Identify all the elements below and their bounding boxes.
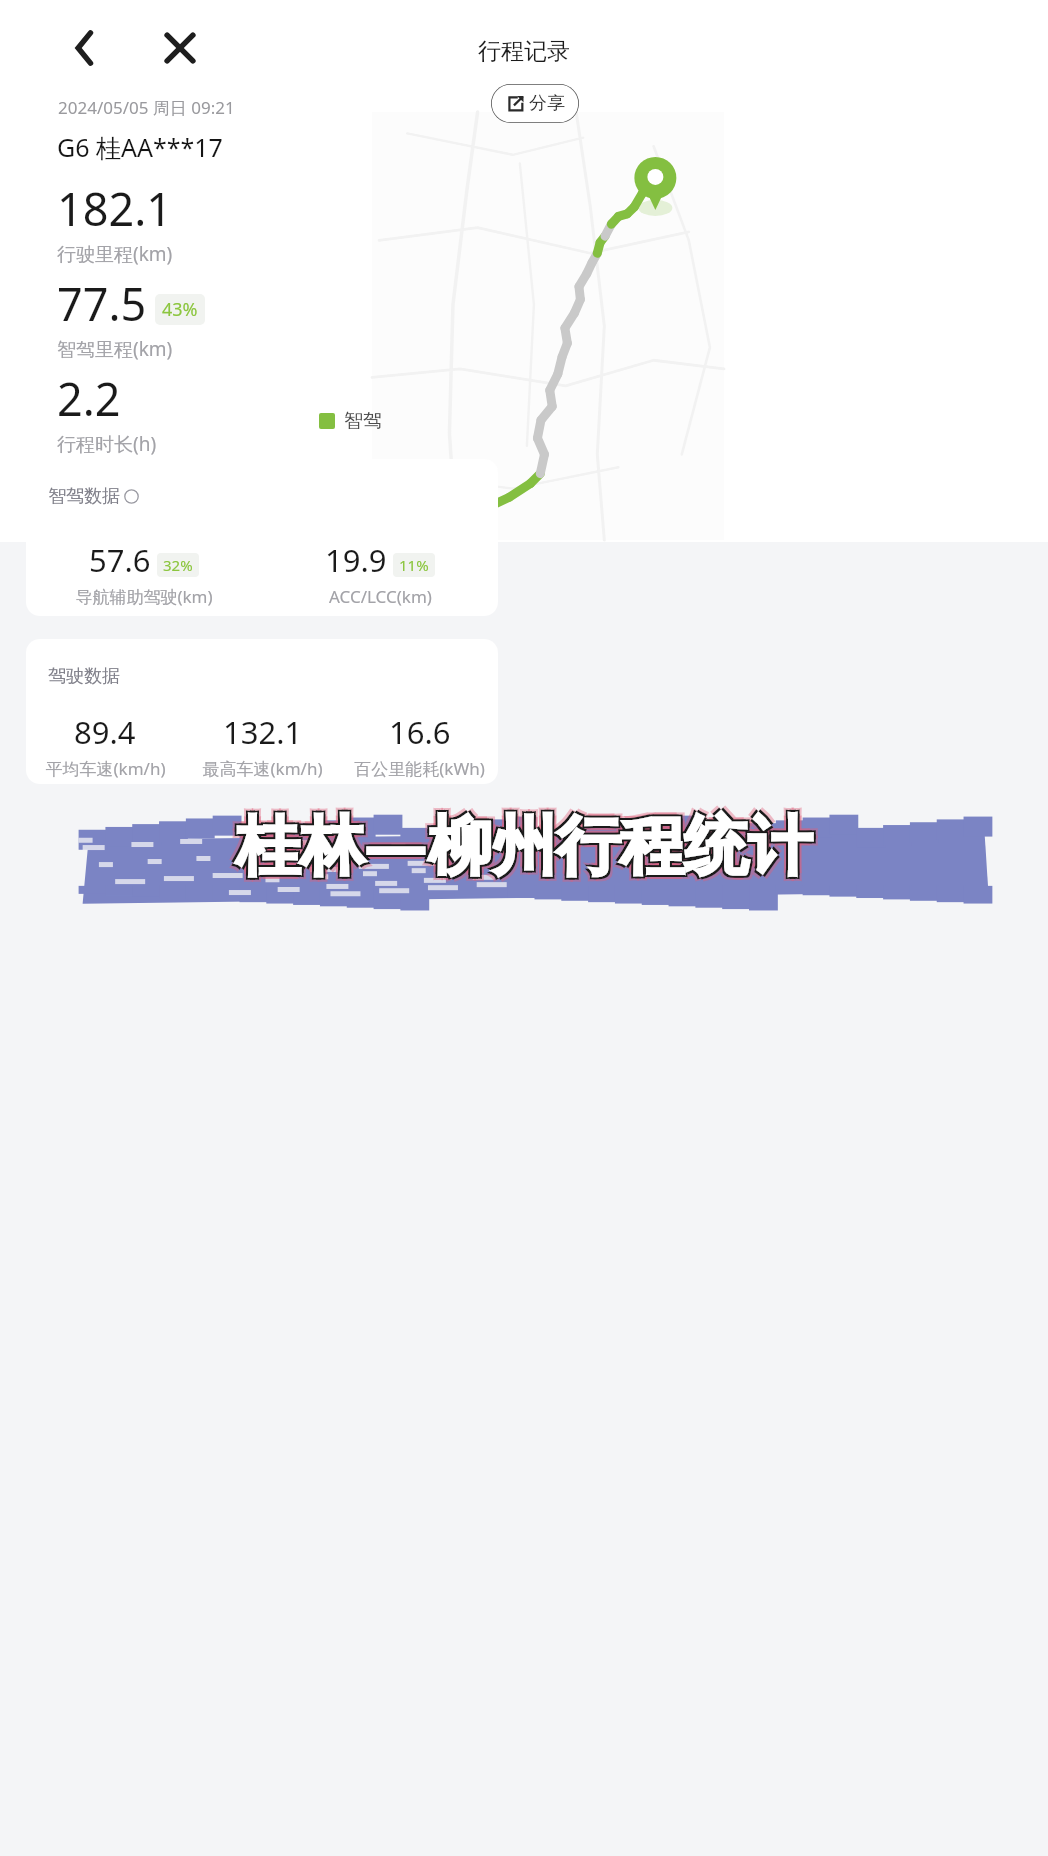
- button[interactable]: 分享: [491, 84, 579, 123]
- staticText: 2024/05/05 周日 09:21: [58, 96, 235, 119]
- button[interactable]: 132.1: [184, 711, 341, 780]
- staticText: 桂林—柳州行程统计: [236, 800, 812, 887]
- staticText: 57.6: [89, 539, 151, 581]
- button[interactable]: 19.9: [262, 539, 498, 608]
- staticText: 132.1: [223, 711, 303, 753]
- staticText: 桂林—柳州行程统计: [240, 804, 816, 891]
- button[interactable]: Close: [152, 20, 208, 76]
- staticText: 32%: [163, 555, 193, 575]
- staticText: 182.1: [57, 178, 173, 239]
- staticText: 桂林—柳州行程统计: [234, 802, 810, 889]
- staticText: G6 桂AA***17: [57, 130, 223, 164]
- staticText: 行驶里程(km): [57, 241, 173, 267]
- staticText: 桂林—柳州行程统计: [234, 798, 810, 885]
- button[interactable]: 57.6: [26, 539, 262, 608]
- staticText: 平均车速(km/h): [45, 757, 166, 780]
- staticText: 行程记录: [478, 37, 570, 66]
- staticText: 导航辅助驾驶(km): [75, 585, 213, 608]
- staticText: 桂林—柳州行程统计: [238, 802, 814, 889]
- button[interactable]: 驾驶数据: [26, 639, 498, 784]
- staticText: 桂林—柳州行程统计: [232, 796, 808, 883]
- staticText: 百公里能耗(kWh): [354, 757, 485, 780]
- staticText: 19.9: [325, 539, 387, 581]
- staticText: 2.2: [57, 368, 121, 429]
- staticText: 桂林—柳州行程统计: [238, 798, 814, 885]
- staticText: 智驾里程(km): [57, 336, 173, 362]
- staticText: 分享: [529, 92, 565, 115]
- staticText: 桂林—柳州行程统计: [240, 796, 816, 883]
- staticText: 桂林—柳州行程统计: [232, 804, 808, 891]
- staticText: ACC/LCC(km): [329, 585, 432, 608]
- staticText: 智驾数据: [48, 485, 120, 508]
- staticText: 77.5: [57, 273, 147, 334]
- staticText: 11%: [399, 555, 429, 575]
- button[interactable]: 89.4: [26, 711, 184, 780]
- button[interactable]: Back: [58, 20, 114, 76]
- button[interactable]: 16.6: [341, 711, 498, 780]
- staticText: 驾驶数据: [48, 665, 120, 688]
- staticText: 行程时长(h): [57, 431, 157, 457]
- staticText: 最高车速(km/h): [202, 757, 323, 780]
- button[interactable]: 智驾数据: [26, 459, 498, 616]
- staticText: 43%: [162, 297, 198, 322]
- staticText: 智驾: [344, 409, 382, 433]
- staticText: 89.4: [74, 711, 136, 753]
- staticText: 16.6: [389, 711, 451, 753]
